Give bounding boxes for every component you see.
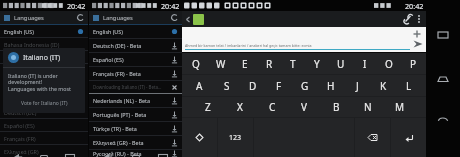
button[interactable]: N <box>352 97 384 117</box>
button[interactable]: Ελληνικά (GR) - Beta <box>89 136 182 150</box>
button[interactable]: B <box>320 97 352 117</box>
button[interactable]: U <box>329 53 353 74</box>
button[interactable]: Downloading Italiano (IT) - Beta... <box>89 81 182 94</box>
staticText: W <box>216 57 226 71</box>
staticText: C <box>269 100 276 114</box>
staticText: Português (PT) - Beta <box>93 111 171 118</box>
staticText: Türkçe (TR) - Beta <box>93 125 171 132</box>
button[interactable]: Deutsch (DE) - Beta <box>89 39 182 53</box>
button[interactable]: Español (ES) <box>0 119 88 132</box>
button[interactable]: M <box>384 97 416 117</box>
button[interactable]: J <box>344 75 370 96</box>
staticText: Downloading Italiano (IT) - Beta... <box>93 84 171 90</box>
button[interactable]: L <box>396 75 422 96</box>
staticText: V <box>301 100 307 114</box>
button[interactable]: T <box>281 53 305 74</box>
staticText: 20:42 <box>67 1 86 11</box>
button[interactable]: Ahmed bir kamon telat / imkanlarini / an… <box>185 43 410 50</box>
staticText: 123 <box>229 133 242 143</box>
button[interactable]: Refresh <box>170 13 179 22</box>
staticText: Deutsch (DE) <box>4 109 84 116</box>
staticText: Z <box>205 100 211 114</box>
button[interactable]: E <box>233 53 257 74</box>
staticText: 20:42 <box>405 1 424 11</box>
button[interactable]: 123 <box>218 118 253 157</box>
staticText: Español (ES) <box>4 122 84 129</box>
staticText: A <box>196 79 203 93</box>
button[interactable]: Home <box>434 70 452 88</box>
staticText: X <box>237 100 243 114</box>
button[interactable]: Refresh <box>76 13 85 22</box>
button[interactable]: Cancel download <box>171 84 178 91</box>
button[interactable]: Backspace <box>355 118 390 157</box>
staticText: Y <box>314 57 320 71</box>
button[interactable]: Türkçe (TR) - Beta <box>89 122 182 136</box>
staticText: K <box>380 79 387 93</box>
staticText: 20:42 <box>161 1 180 11</box>
button[interactable]: Y <box>305 53 329 74</box>
staticText: S <box>224 79 230 93</box>
button[interactable]: Deutsch (DE) <box>0 106 88 119</box>
staticText: I <box>363 57 367 71</box>
button[interactable]: Français (FR) <box>0 132 88 145</box>
staticText: Q <box>192 57 200 71</box>
button[interactable]: App icon <box>3 14 11 22</box>
button[interactable]: Vote for Italiano (IT) <box>15 98 74 109</box>
button[interactable]: C <box>256 97 288 117</box>
button[interactable]: O <box>377 53 401 74</box>
staticText: T <box>290 57 296 71</box>
staticText: D <box>249 79 257 93</box>
staticText: Français (FR) - Beta <box>93 70 171 77</box>
button[interactable]: Bahasa Melayu (MY) <box>0 51 88 64</box>
button[interactable]: A <box>186 75 213 96</box>
staticText: Español (ES) <box>93 56 171 63</box>
button[interactable]: G <box>292 75 318 96</box>
button[interactable]: Español (ES) <box>89 53 182 67</box>
button[interactable]: English (US) <box>89 25 182 39</box>
button[interactable]: Send <box>412 38 424 50</box>
button[interactable]: Z <box>192 97 224 117</box>
staticText: N <box>364 100 372 114</box>
button[interactable]: H <box>318 75 344 96</box>
staticText: H <box>327 79 335 93</box>
button[interactable]: Add <box>412 29 422 39</box>
button[interactable]: App icon <box>92 14 100 22</box>
button[interactable]: Français (FR) - Beta <box>89 67 182 81</box>
button[interactable]: Recents <box>434 26 452 44</box>
staticText: F <box>276 79 282 93</box>
staticText: Ahmed bir kamon telat / imkanlarini / an… <box>185 43 312 48</box>
button[interactable]: Back <box>184 15 193 24</box>
staticText: Русский (RU) - Beta <box>93 150 171 157</box>
button[interactable]: X <box>224 97 256 117</box>
staticText: Nederlands (NL) - Beta <box>93 97 171 104</box>
button[interactable]: Shift <box>182 118 217 157</box>
button[interactable]: P <box>401 53 425 74</box>
button[interactable]: Bahasa Indonesia (ID) <box>0 38 88 51</box>
staticText: Italiano (IT) <box>23 53 61 63</box>
button[interactable]: Attach <box>402 13 414 25</box>
button[interactable]: Q <box>183 53 208 74</box>
button[interactable]: Ελληνικά (GR) <box>0 145 88 157</box>
staticText: Languages <box>14 14 76 22</box>
staticText: Vote for Italiano (IT) <box>21 100 68 107</box>
button[interactable]: V <box>288 97 320 117</box>
button[interactable]: Enter <box>391 118 426 157</box>
button[interactable]: Back <box>434 113 452 131</box>
button[interactable]: Português (PT) - Beta <box>89 108 182 122</box>
staticText: G <box>301 79 309 93</box>
button[interactable]: K <box>370 75 396 96</box>
button[interactable]: W <box>208 53 233 74</box>
button[interactable]: I <box>353 53 377 74</box>
button[interactable]: R <box>257 53 281 74</box>
button[interactable]: English (US) <box>0 25 88 38</box>
button[interactable]: Nederlands (NL) - Beta <box>89 94 182 108</box>
button[interactable]: D <box>240 75 266 96</box>
button[interactable]: S <box>213 75 240 96</box>
staticText: Français (FR) <box>4 135 84 142</box>
button[interactable]: F <box>266 75 292 96</box>
button[interactable]: More options <box>414 14 424 24</box>
button[interactable]: Русский (RU) - Beta <box>89 150 182 157</box>
staticText: P <box>410 57 417 71</box>
button[interactable]: Contact avatar <box>193 14 204 25</box>
